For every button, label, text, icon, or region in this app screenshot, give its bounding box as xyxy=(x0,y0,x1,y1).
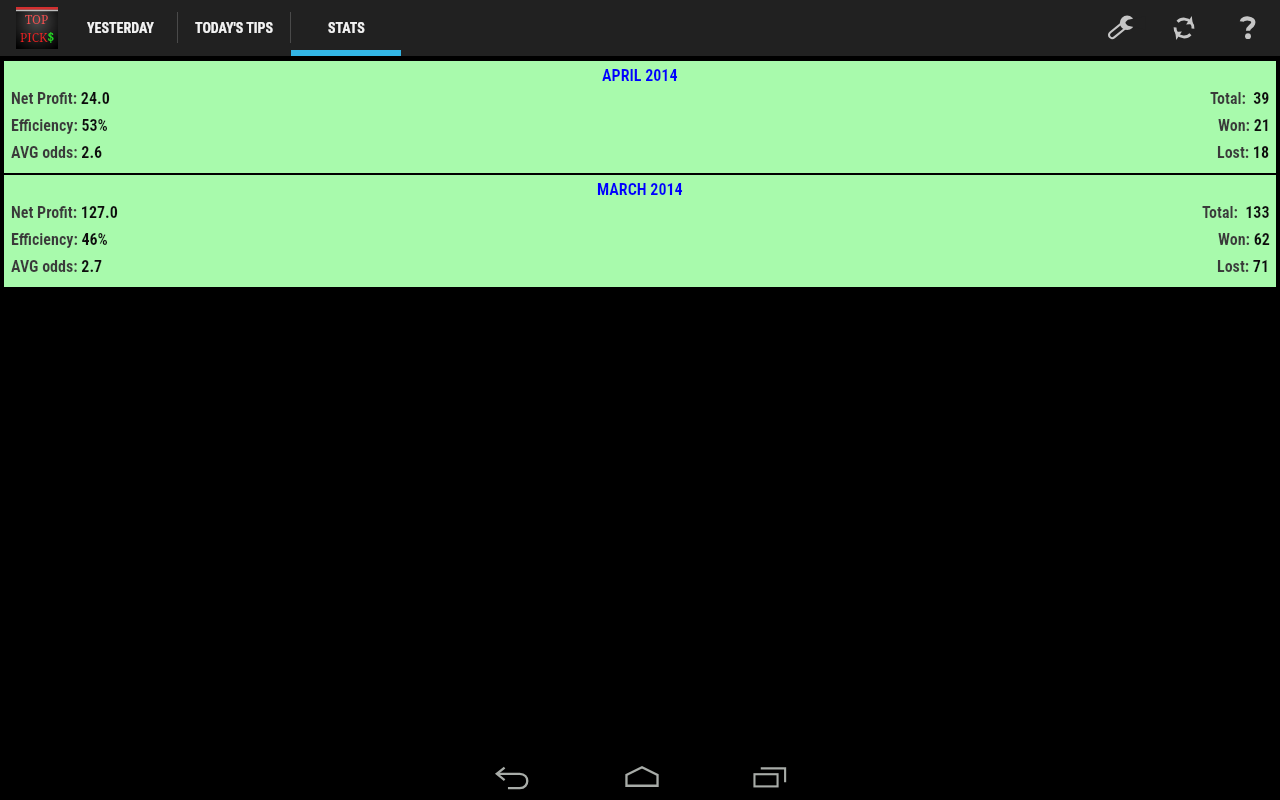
staticText: PICK$ xyxy=(20,29,55,45)
staticText: Total: 133 xyxy=(1202,203,1270,222)
staticText: Efficiency: 53% xyxy=(11,116,108,135)
staticText: Lost: 71 xyxy=(1217,257,1270,276)
button[interactable]: Refresh xyxy=(1152,0,1216,56)
button[interactable]: APRIL 2014 xyxy=(4,61,1276,173)
button[interactable]: Help xyxy=(1216,0,1280,56)
staticText: Net Profit: 127.0 xyxy=(11,203,118,222)
button[interactable]: TODAY'S TIPS xyxy=(184,0,284,56)
staticText: TOP xyxy=(25,11,49,27)
button[interactable]: MARCH 2014 xyxy=(4,175,1276,287)
staticText: AVG odds: 2.6 xyxy=(11,143,103,162)
button[interactable]: Settings xyxy=(1088,0,1152,56)
button[interactable]: Recent apps xyxy=(707,757,835,799)
staticText: MARCH 2014 xyxy=(597,180,683,199)
button[interactable]: STATS xyxy=(291,0,401,56)
staticText: Net Profit: 24.0 xyxy=(11,89,110,108)
staticText: Lost: 18 xyxy=(1217,143,1270,162)
staticText: Won: 62 xyxy=(1218,230,1270,249)
staticText: YESTERDAY xyxy=(87,20,154,36)
button[interactable]: Top Picks home xyxy=(16,7,58,49)
button[interactable]: YESTERDAY xyxy=(70,0,171,56)
staticText: STATS xyxy=(328,20,365,36)
staticText: Won: 21 xyxy=(1218,116,1270,135)
staticText: Efficiency: 46% xyxy=(11,230,108,249)
staticText: TODAY'S TIPS xyxy=(195,20,274,36)
button[interactable]: Home xyxy=(579,758,707,800)
button[interactable]: Back xyxy=(450,757,578,799)
staticText: Total: 39 xyxy=(1210,89,1270,108)
staticText: APRIL 2014 xyxy=(602,66,678,85)
staticText: AVG odds: 2.7 xyxy=(11,257,103,276)
